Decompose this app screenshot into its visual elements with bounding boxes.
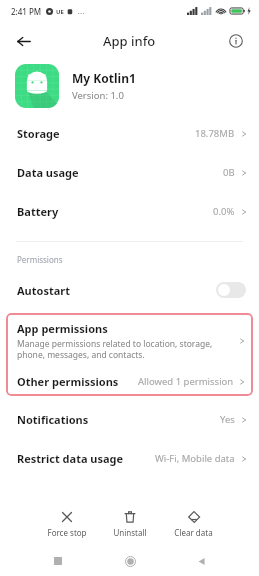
button[interactable]: Clear data	[168, 508, 219, 540]
button[interactable]: About this app	[221, 26, 251, 56]
staticText: Allowed 1 permission	[138, 375, 234, 388]
button[interactable]: Back	[188, 548, 214, 574]
button[interactable]: Uninstall	[107, 508, 153, 540]
staticText: 0.0%	[213, 205, 235, 218]
staticText: My Kotlin1	[72, 70, 136, 86]
button[interactable]: Battery	[0, 192, 259, 231]
button[interactable]: Autostart	[0, 273, 259, 307]
staticText: Notifications	[17, 412, 89, 427]
button[interactable]: Notifications	[0, 400, 259, 439]
button[interactable]: Data usage	[0, 153, 259, 192]
staticText: UE	[56, 8, 64, 16]
staticText: Battery	[17, 204, 59, 219]
staticText: 18.78MB	[195, 127, 235, 140]
button[interactable]: Recents	[45, 548, 71, 574]
staticText: 0B	[223, 166, 235, 179]
staticText: Restrict data usage	[17, 451, 124, 466]
staticText: 2:41 PM	[11, 6, 42, 17]
staticText: Force stop	[47, 527, 87, 538]
staticText: Clear data	[174, 527, 213, 538]
staticText: Data usage	[17, 165, 79, 180]
staticText: Storage	[17, 126, 60, 141]
button[interactable]: Force stop	[41, 508, 93, 540]
button[interactable]: Back	[8, 26, 38, 56]
staticText: Wi-Fi, Mobile data	[155, 452, 235, 465]
staticText: Uninstall	[113, 527, 147, 538]
staticText: App permissions	[17, 321, 108, 336]
staticText: Other permissions	[17, 374, 119, 389]
button[interactable]: Other permissions	[6, 367, 253, 396]
button[interactable]: Home	[117, 548, 143, 574]
staticText: Autostart	[17, 283, 70, 298]
staticText: Version: 1.0	[72, 89, 124, 102]
button[interactable]: App permissions	[6, 313, 253, 367]
button[interactable]: Restrict data usage	[0, 439, 259, 478]
staticText: Yes	[220, 413, 235, 426]
staticText: Permissions	[17, 254, 63, 265]
button[interactable]: Storage	[0, 114, 259, 153]
staticText: Manage permissions related to location, …	[17, 338, 213, 360]
staticText: App info	[103, 32, 156, 50]
